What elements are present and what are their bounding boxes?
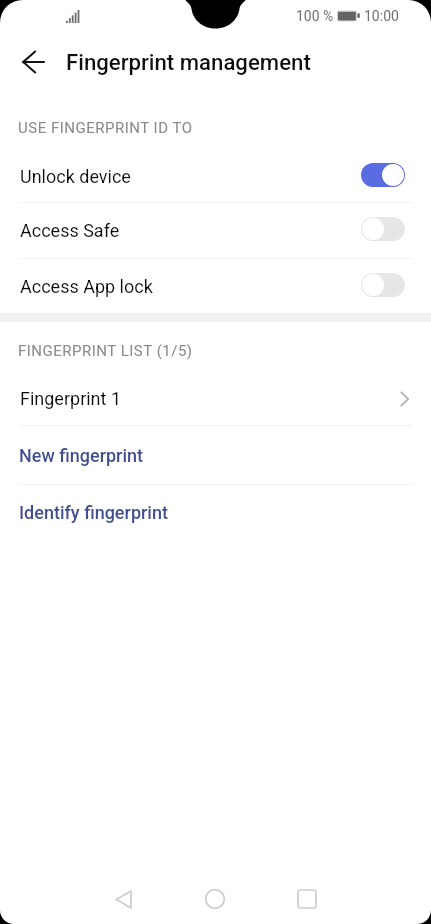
button[interactable]: Unlock device <box>0 148 431 204</box>
staticText: 100 % <box>296 8 334 24</box>
staticText: 10:00 <box>364 8 399 24</box>
staticText: Identify fingerprint <box>19 502 168 523</box>
staticText: Access Safe <box>20 220 120 241</box>
button[interactable]: Recents <box>261 873 353 924</box>
staticText: USE FINGERPRINT ID TO <box>18 119 193 137</box>
staticText: Access App lock <box>20 276 153 297</box>
button[interactable]: Fingerprint 1 <box>0 371 431 426</box>
button[interactable]: Back <box>77 873 169 924</box>
staticText: Fingerprint management <box>66 49 311 75</box>
button[interactable]: Access Safe <box>0 202 431 258</box>
button[interactable]: Home <box>169 873 261 924</box>
button[interactable]: Identify fingerprint <box>0 483 431 541</box>
button[interactable]: Back <box>13 42 57 82</box>
button[interactable]: New fingerprint <box>0 426 431 484</box>
staticText: Unlock device <box>20 166 131 187</box>
staticText: FINGERPRINT LIST (1/5) <box>18 342 193 360</box>
staticText: Fingerprint 1 <box>20 388 122 409</box>
button[interactable]: Access App lock <box>0 258 431 314</box>
staticText: New fingerprint <box>19 445 144 466</box>
